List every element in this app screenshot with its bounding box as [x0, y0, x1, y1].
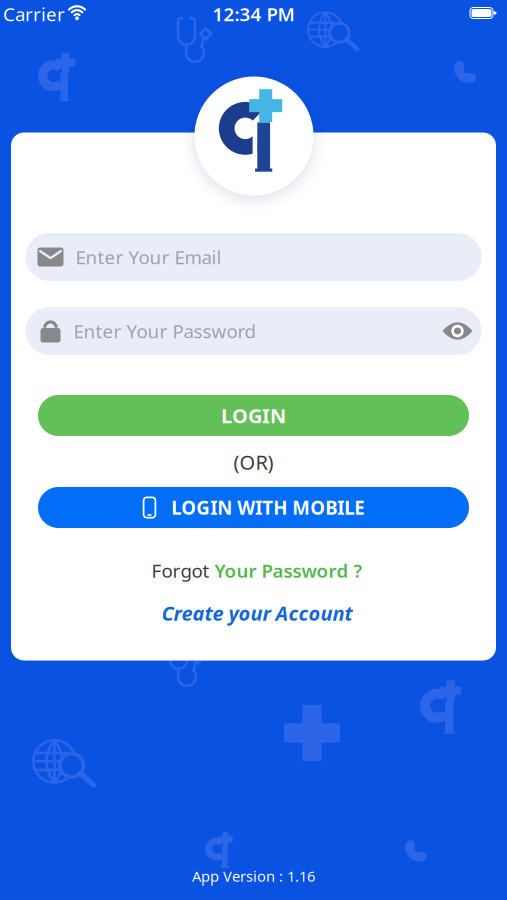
staticText: Enter Your Password: [73, 319, 255, 343]
staticText: LOGIN: [221, 402, 286, 429]
staticText: Create your Account: [161, 600, 352, 626]
button[interactable]: Enter Your Email: [25, 233, 481, 281]
staticText: Carrier: [3, 2, 65, 26]
button[interactable]: Forgot: [151, 558, 362, 583]
button[interactable]: [440, 316, 474, 346]
staticText: Enter Your Email: [75, 245, 221, 269]
staticText: LOGIN WITH MOBILE: [171, 495, 364, 520]
button[interactable]: Create your Account: [161, 600, 352, 626]
button[interactable]: Enter Your Password: [25, 307, 481, 355]
staticText: Forgot: [151, 558, 209, 583]
staticText: (OR): [233, 449, 273, 475]
staticText: App Version : 1.16: [192, 866, 315, 886]
staticText: 12:34 PM: [212, 2, 294, 26]
button[interactable]: LOGIN: [38, 395, 469, 436]
button[interactable]: LOGIN WITH MOBILE: [38, 487, 469, 528]
staticText: Your Password ?: [214, 558, 362, 583]
